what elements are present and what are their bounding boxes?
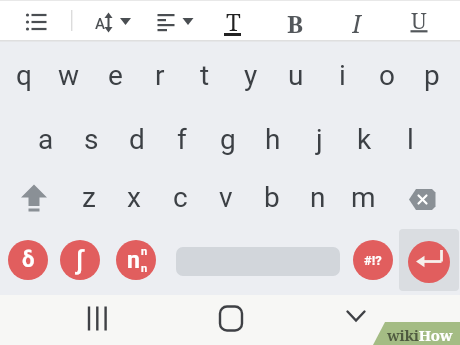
button[interactable]: m — [342, 169, 384, 225]
staticText: i — [339, 59, 346, 92]
staticText: m — [351, 181, 376, 214]
staticText: I — [352, 6, 362, 36]
staticText: x — [127, 181, 141, 214]
button[interactable] — [399, 229, 459, 291]
staticText: t — [200, 59, 210, 92]
button[interactable]: r — [139, 47, 181, 103]
button[interactable]: I — [342, 6, 372, 36]
button[interactable]: c — [159, 169, 201, 225]
staticText: n — [310, 181, 326, 214]
button[interactable]: d — [116, 111, 158, 167]
staticText: h — [265, 123, 281, 156]
staticText: n — [141, 262, 148, 275]
staticText: U — [411, 5, 427, 35]
staticText: u — [288, 59, 304, 92]
staticText: δ — [22, 247, 35, 273]
staticText: o — [379, 59, 395, 92]
staticText: g — [220, 123, 236, 156]
staticText: wikiHow — [387, 325, 453, 345]
button[interactable] — [116, 240, 156, 280]
staticText: s — [84, 123, 99, 156]
button[interactable]: a — [25, 111, 67, 167]
button[interactable]: t — [184, 47, 226, 103]
button[interactable]: k — [343, 111, 385, 167]
button[interactable]: j — [298, 111, 340, 167]
button[interactable]: o — [366, 47, 408, 103]
button[interactable]: δ — [8, 240, 48, 280]
staticText: r — [155, 59, 165, 92]
staticText: A — [95, 15, 105, 33]
staticText: w — [58, 59, 80, 92]
button[interactable]: ∫ — [60, 240, 100, 280]
button[interactable]: n — [122, 240, 144, 280]
button[interactable] — [8, 240, 48, 280]
staticText: n — [141, 245, 148, 258]
staticText: n — [127, 247, 140, 274]
button[interactable]: p — [411, 47, 453, 103]
button[interactable]: y — [230, 47, 272, 103]
button[interactable]: h — [252, 111, 294, 167]
button[interactable]: q — [3, 47, 45, 103]
button[interactable]: U — [404, 5, 434, 35]
staticText: b — [264, 181, 280, 214]
staticText: f — [177, 123, 187, 156]
button[interactable]: b — [251, 169, 293, 225]
staticText: p — [424, 59, 440, 92]
button[interactable]: n — [297, 169, 339, 225]
staticText: v — [219, 181, 233, 214]
staticText: a — [38, 123, 54, 156]
staticText: q — [16, 59, 32, 92]
button[interactable]: s — [70, 111, 112, 167]
staticText: #!? — [364, 253, 382, 268]
button[interactable]: w — [48, 47, 90, 103]
staticText: B — [287, 7, 304, 37]
staticText: j — [316, 123, 323, 156]
staticText: l — [407, 123, 414, 156]
button[interactable] — [353, 240, 393, 280]
staticText: d — [129, 123, 145, 156]
staticText: e — [108, 59, 123, 92]
button[interactable]: A — [88, 11, 112, 37]
button[interactable]: i — [321, 47, 363, 103]
button[interactable]: v — [205, 169, 247, 225]
button[interactable]: z — [68, 169, 110, 225]
staticText: k — [357, 123, 372, 156]
button[interactable] — [408, 241, 450, 283]
button[interactable]: #!? — [353, 240, 393, 280]
button[interactable]: g — [207, 111, 249, 167]
button[interactable]: x — [113, 169, 155, 225]
staticText: z — [82, 181, 96, 214]
button[interactable]: B — [280, 7, 310, 37]
button[interactable] — [60, 240, 100, 280]
button[interactable]: T — [218, 5, 248, 35]
button[interactable]: f — [161, 111, 203, 167]
button[interactable]: e — [94, 47, 136, 103]
staticText: ∫ — [76, 245, 84, 275]
staticText: c — [173, 181, 188, 214]
button[interactable]: l — [389, 111, 431, 167]
staticText: T — [226, 5, 241, 35]
button[interactable]: u — [275, 47, 317, 103]
staticText: y — [244, 59, 258, 92]
